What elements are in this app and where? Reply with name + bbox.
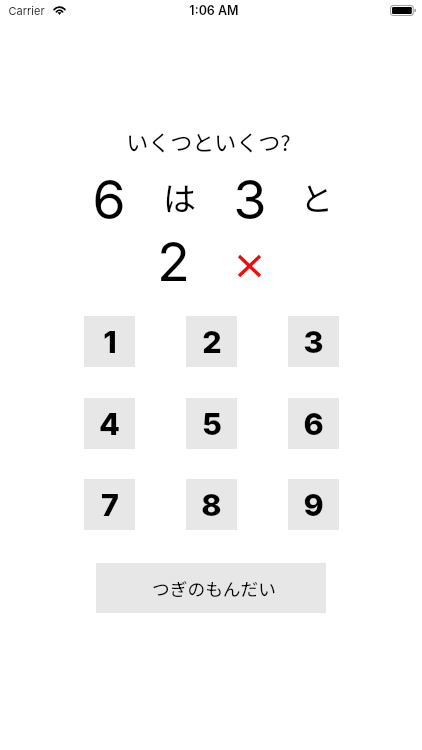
staticText: 3 <box>233 167 267 232</box>
other: Incorrect answer <box>239 256 260 276</box>
staticText: 8 <box>201 486 222 523</box>
button[interactable]: 9 <box>288 479 339 530</box>
button[interactable]: つぎのもんだい <box>96 563 326 613</box>
button[interactable]: 2 <box>186 316 237 367</box>
button[interactable]: 5 <box>186 398 237 449</box>
staticText: 1:06 AM <box>189 3 239 18</box>
button[interactable]: 1 <box>84 316 135 367</box>
other: Wi-Fi <box>52 4 67 15</box>
button[interactable]: 8 <box>186 479 237 530</box>
staticText: 5 <box>202 405 222 442</box>
button[interactable]: 3 <box>288 316 339 367</box>
other: Battery full <box>390 5 416 16</box>
staticText: 7 <box>101 486 119 523</box>
staticText: 2 <box>202 323 222 360</box>
staticText: 6 <box>303 405 324 442</box>
button[interactable]: 7 <box>84 479 135 530</box>
staticText: 3 <box>303 323 324 360</box>
staticText: 4 <box>99 405 120 442</box>
staticText: つぎのもんだい <box>152 575 276 601</box>
button[interactable]: 4 <box>84 398 135 449</box>
staticText: 6 <box>92 167 126 232</box>
staticText: と <box>300 173 333 221</box>
button[interactable]: 6 <box>288 398 339 449</box>
staticText: いくつといくつ? <box>126 125 291 157</box>
staticText: 9 <box>303 486 324 523</box>
staticText: Carrier <box>8 4 45 17</box>
staticText: は <box>163 173 196 221</box>
staticText: 1 <box>103 323 117 360</box>
staticText: 2 <box>157 229 190 294</box>
